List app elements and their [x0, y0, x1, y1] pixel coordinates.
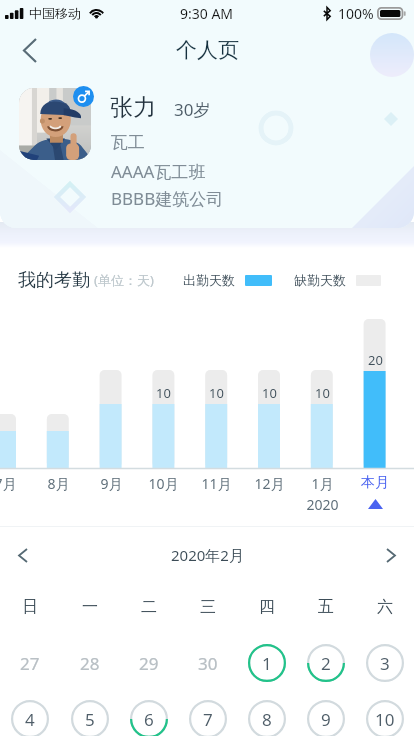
- staticText: 10: [156, 384, 171, 402]
- staticText: 10: [375, 708, 395, 731]
- button[interactable]: 8: [248, 700, 286, 736]
- staticText: 30岁: [174, 98, 211, 121]
- staticText: 5: [85, 708, 95, 731]
- button[interactable]: 28: [71, 644, 109, 682]
- button[interactable]: 30: [189, 644, 227, 682]
- staticText: 瓦工: [111, 132, 145, 153]
- button[interactable]: 1: [248, 644, 286, 682]
- staticText: 7月: [0, 474, 17, 493]
- button[interactable]: 9: [307, 700, 345, 736]
- staticText: 本月: [361, 474, 389, 492]
- staticText: 2020年2月: [171, 545, 244, 565]
- staticText: 20: [368, 351, 383, 369]
- staticText: (单位：天): [94, 271, 154, 289]
- staticText: BBBB建筑公司: [111, 187, 224, 210]
- staticText: 10: [209, 384, 224, 402]
- button[interactable]: 27: [11, 644, 49, 682]
- staticText: 一: [82, 597, 98, 617]
- button[interactable]: 29: [130, 644, 168, 682]
- staticText: 出勤天数: [183, 272, 235, 288]
- staticText: 8月: [47, 474, 70, 493]
- staticText: 中国移动: [29, 5, 81, 21]
- staticText: 1月: [311, 474, 334, 493]
- staticText: 9: [321, 708, 331, 731]
- staticText: 1: [262, 652, 272, 675]
- staticText: 日: [22, 597, 38, 617]
- button[interactable]: 5: [71, 700, 109, 736]
- button[interactable]: Back: [10, 30, 50, 70]
- button[interactable]: 2: [307, 644, 345, 682]
- button[interactable]: Next month: [373, 537, 409, 573]
- staticText: 五: [318, 597, 334, 617]
- staticText: 10: [262, 384, 277, 402]
- staticText: 100%: [338, 4, 374, 23]
- button[interactable]: 7: [189, 700, 227, 736]
- staticText: 12月: [254, 474, 285, 493]
- button[interactable]: 10: [366, 700, 404, 736]
- staticText: 8: [262, 708, 272, 731]
- staticText: 缺勤天数: [294, 272, 346, 288]
- staticText: 28: [80, 652, 100, 675]
- button[interactable]: 4: [11, 700, 49, 736]
- staticText: 9月: [100, 474, 123, 493]
- staticText: 6: [144, 708, 154, 731]
- staticText: 2020: [306, 495, 339, 514]
- staticText: 10: [315, 384, 330, 402]
- staticText: 六: [377, 597, 393, 617]
- staticText: 3: [380, 652, 390, 675]
- staticText: 27: [20, 652, 40, 675]
- staticText: 30: [198, 652, 218, 675]
- staticText: 我的考勤: [18, 269, 90, 292]
- staticText: 11月: [201, 474, 232, 493]
- staticText: 2: [321, 652, 331, 675]
- staticText: AAAA瓦工班: [111, 160, 206, 183]
- staticText: 三: [200, 597, 216, 617]
- staticText: 10月: [148, 474, 179, 493]
- staticText: 四: [259, 597, 275, 617]
- staticText: 29: [139, 652, 159, 675]
- staticText: 张力: [110, 93, 156, 122]
- staticText: 二: [141, 597, 157, 617]
- staticText: 9:30 AM: [180, 4, 234, 23]
- staticText: 个人页: [176, 37, 239, 63]
- staticText: 4: [25, 708, 35, 731]
- staticText: 7: [203, 708, 213, 731]
- button[interactable]: 6: [130, 700, 168, 736]
- button[interactable]: Previous month: [5, 537, 41, 573]
- button[interactable]: 3: [366, 644, 404, 682]
